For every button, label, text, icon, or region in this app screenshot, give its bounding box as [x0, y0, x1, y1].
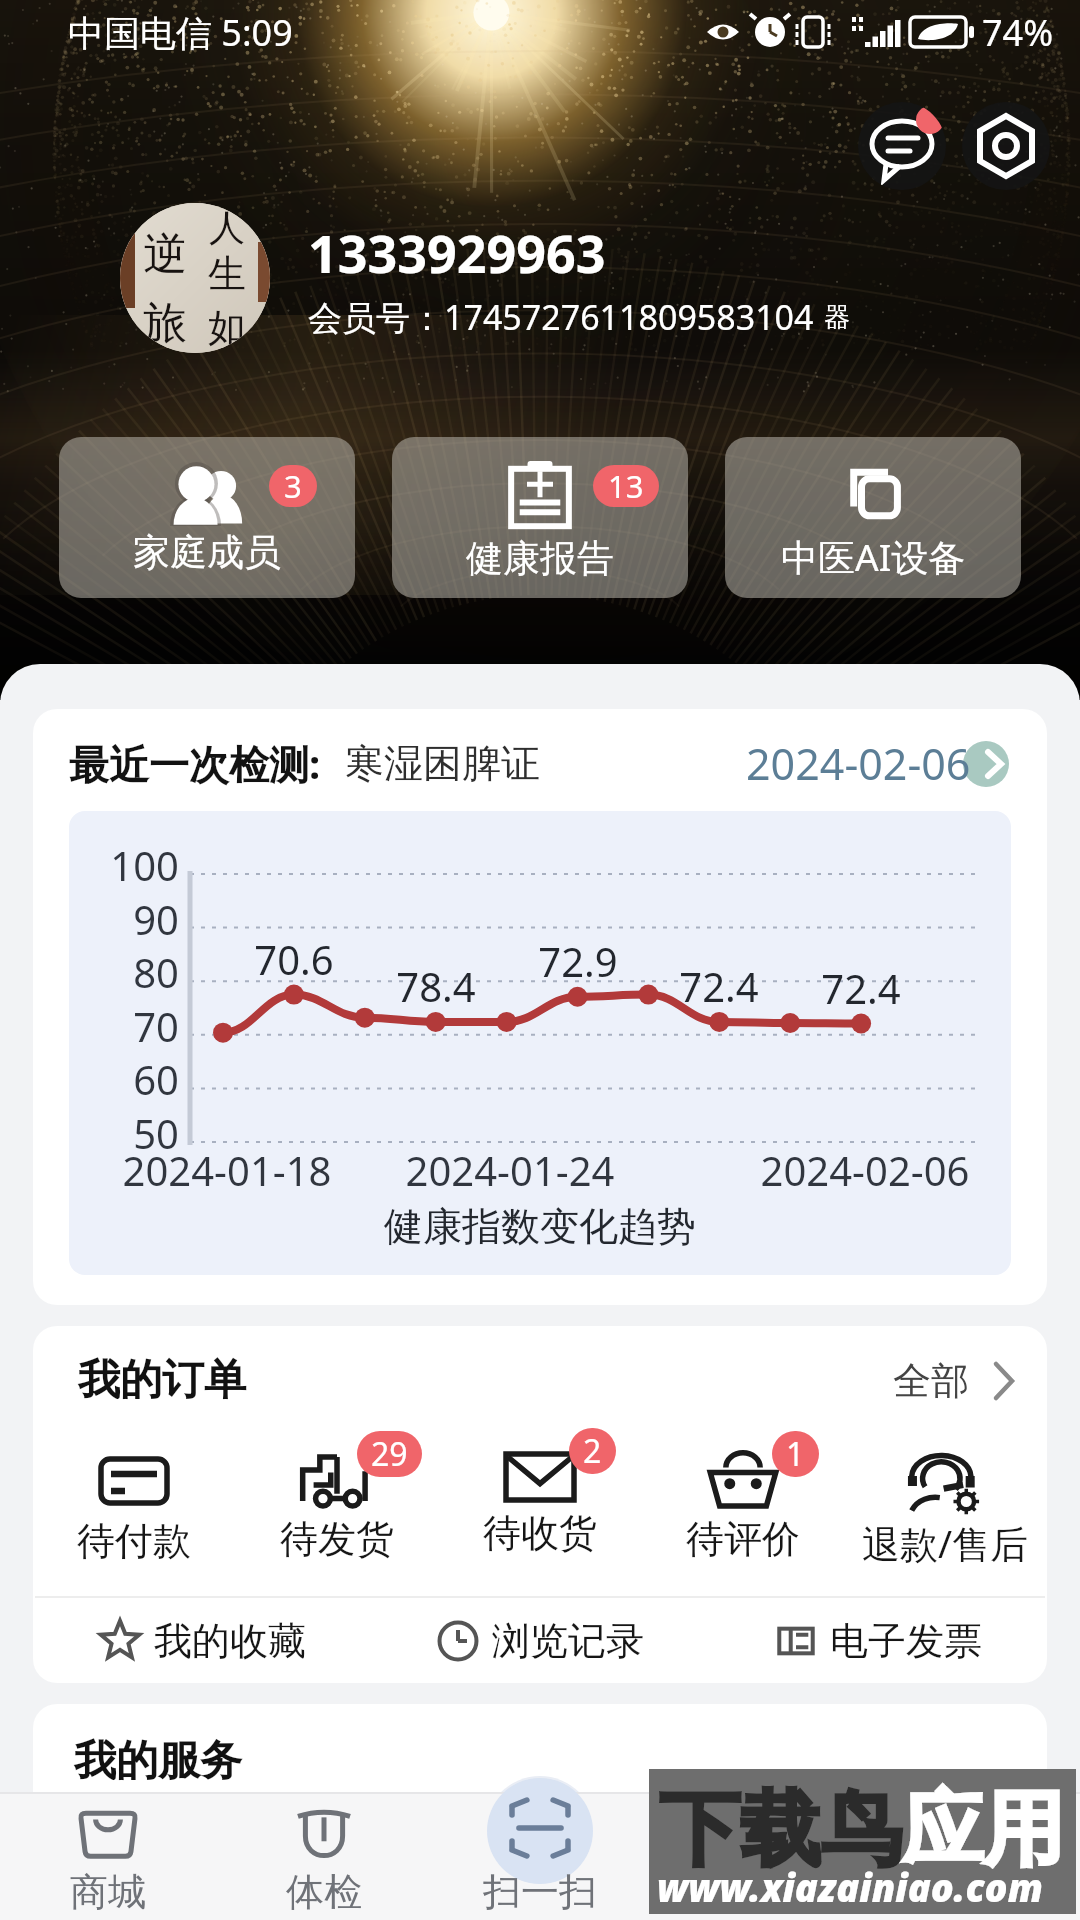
staticText: 我的服务 — [74, 1735, 242, 1788]
button[interactable]: 浏览记录 — [371, 1598, 709, 1683]
button[interactable]: Settings — [962, 102, 1050, 190]
staticText: 我的订单 — [78, 1354, 246, 1407]
button[interactable]: 29 — [235, 1449, 438, 1563]
staticText: 100 — [72, 838, 179, 892]
staticText: 健康 — [718, 1868, 794, 1916]
staticText: www.xiazainiao.com — [657, 1861, 1043, 1913]
staticText: 如 — [208, 304, 246, 352]
button[interactable]: 1 — [641, 1449, 844, 1563]
staticText: 最近一次检测: — [69, 736, 321, 791]
button[interactable]: 我的收藏 — [33, 1598, 371, 1683]
staticText: 人 — [209, 205, 245, 250]
staticText: 待付款 — [77, 1517, 191, 1565]
staticText: 1333929963 — [308, 217, 606, 288]
staticText: 70.6 — [194, 932, 394, 986]
staticText: 70 — [72, 999, 179, 1053]
staticText: 健康指数变化趋势 — [384, 1202, 696, 1251]
staticText: 旅 — [143, 296, 187, 351]
staticText: 中医AI设备 — [781, 531, 966, 582]
button[interactable]: 扫一扫 — [432, 1778, 648, 1920]
button[interactable]: 退款/售后 — [844, 1449, 1047, 1569]
staticText: 待发货 — [280, 1515, 394, 1563]
staticText: 13 — [608, 465, 644, 507]
staticText: 生 — [208, 250, 246, 298]
button[interactable]: 我的订单 — [33, 1326, 1047, 1409]
button[interactable]: 2 — [438, 1449, 641, 1557]
button[interactable]: Avatar — [120, 203, 270, 353]
staticText: 退款/售后 — [862, 1517, 1029, 1569]
staticText: 72.4 — [761, 961, 961, 1015]
staticText: 50 — [72, 1106, 179, 1160]
staticText: 下载鸟 — [659, 1779, 902, 1881]
button[interactable]: 体检 — [216, 1778, 432, 1920]
staticText: 60 — [72, 1052, 179, 1106]
staticText: 78.4 — [336, 959, 536, 1013]
staticText: 待评价 — [686, 1515, 800, 1563]
staticText: 器 — [824, 301, 850, 334]
staticText: 2 — [583, 1429, 602, 1473]
staticText: 家庭成员 — [133, 529, 281, 576]
staticText: 72.4 — [619, 959, 819, 1013]
button[interactable]: 待付款 — [33, 1449, 235, 1565]
staticText: 寒湿困脾证 — [345, 739, 540, 788]
button[interactable]: 最近一次检测: — [33, 709, 1047, 811]
staticText: 80 — [72, 945, 179, 999]
staticText: 逆 — [143, 227, 187, 282]
staticText: 浏览记录 — [492, 1617, 644, 1665]
button[interactable]: 3 — [59, 437, 355, 598]
staticText: 扫一扫 — [483, 1868, 597, 1916]
staticText: 1 — [786, 1432, 805, 1476]
staticText: 90 — [72, 892, 179, 946]
staticText: 29 — [371, 1432, 408, 1476]
button[interactable]: 健康 — [648, 1778, 864, 1920]
staticText: 3 — [284, 465, 302, 507]
button[interactable]: Messages — [858, 102, 946, 190]
staticText: 商城 — [70, 1868, 146, 1916]
button[interactable]: 电子发票 — [709, 1598, 1047, 1683]
button[interactable]: 我的 — [864, 1778, 1080, 1920]
button[interactable]: 中医AI设备 — [725, 437, 1021, 598]
button[interactable]: 13 — [392, 437, 688, 598]
staticText: 72.9 — [478, 934, 678, 988]
staticText: 我的收藏 — [154, 1617, 306, 1665]
staticText: 电子发票 — [830, 1617, 982, 1665]
staticText: 体检 — [286, 1868, 362, 1916]
staticText: 2024-01-24 — [350, 1143, 670, 1197]
staticText: 中国电信 5:09 — [68, 8, 293, 57]
staticText: 2024-01-18 — [69, 1143, 387, 1197]
staticText: 应用 — [902, 1779, 1064, 1881]
staticText: 全部 — [893, 1357, 969, 1405]
staticText: 2024-02-06 — [705, 1143, 1011, 1197]
staticText: 会员号：1745727611809583104 — [308, 294, 814, 340]
staticText: 待收货 — [483, 1509, 597, 1557]
button[interactable]: 商城 — [0, 1778, 216, 1920]
staticText: 2024-02-06 — [746, 734, 971, 793]
staticText: 健康报告 — [466, 535, 614, 582]
staticText: 我的 — [934, 1868, 1010, 1916]
staticText: 74% — [982, 8, 1054, 57]
